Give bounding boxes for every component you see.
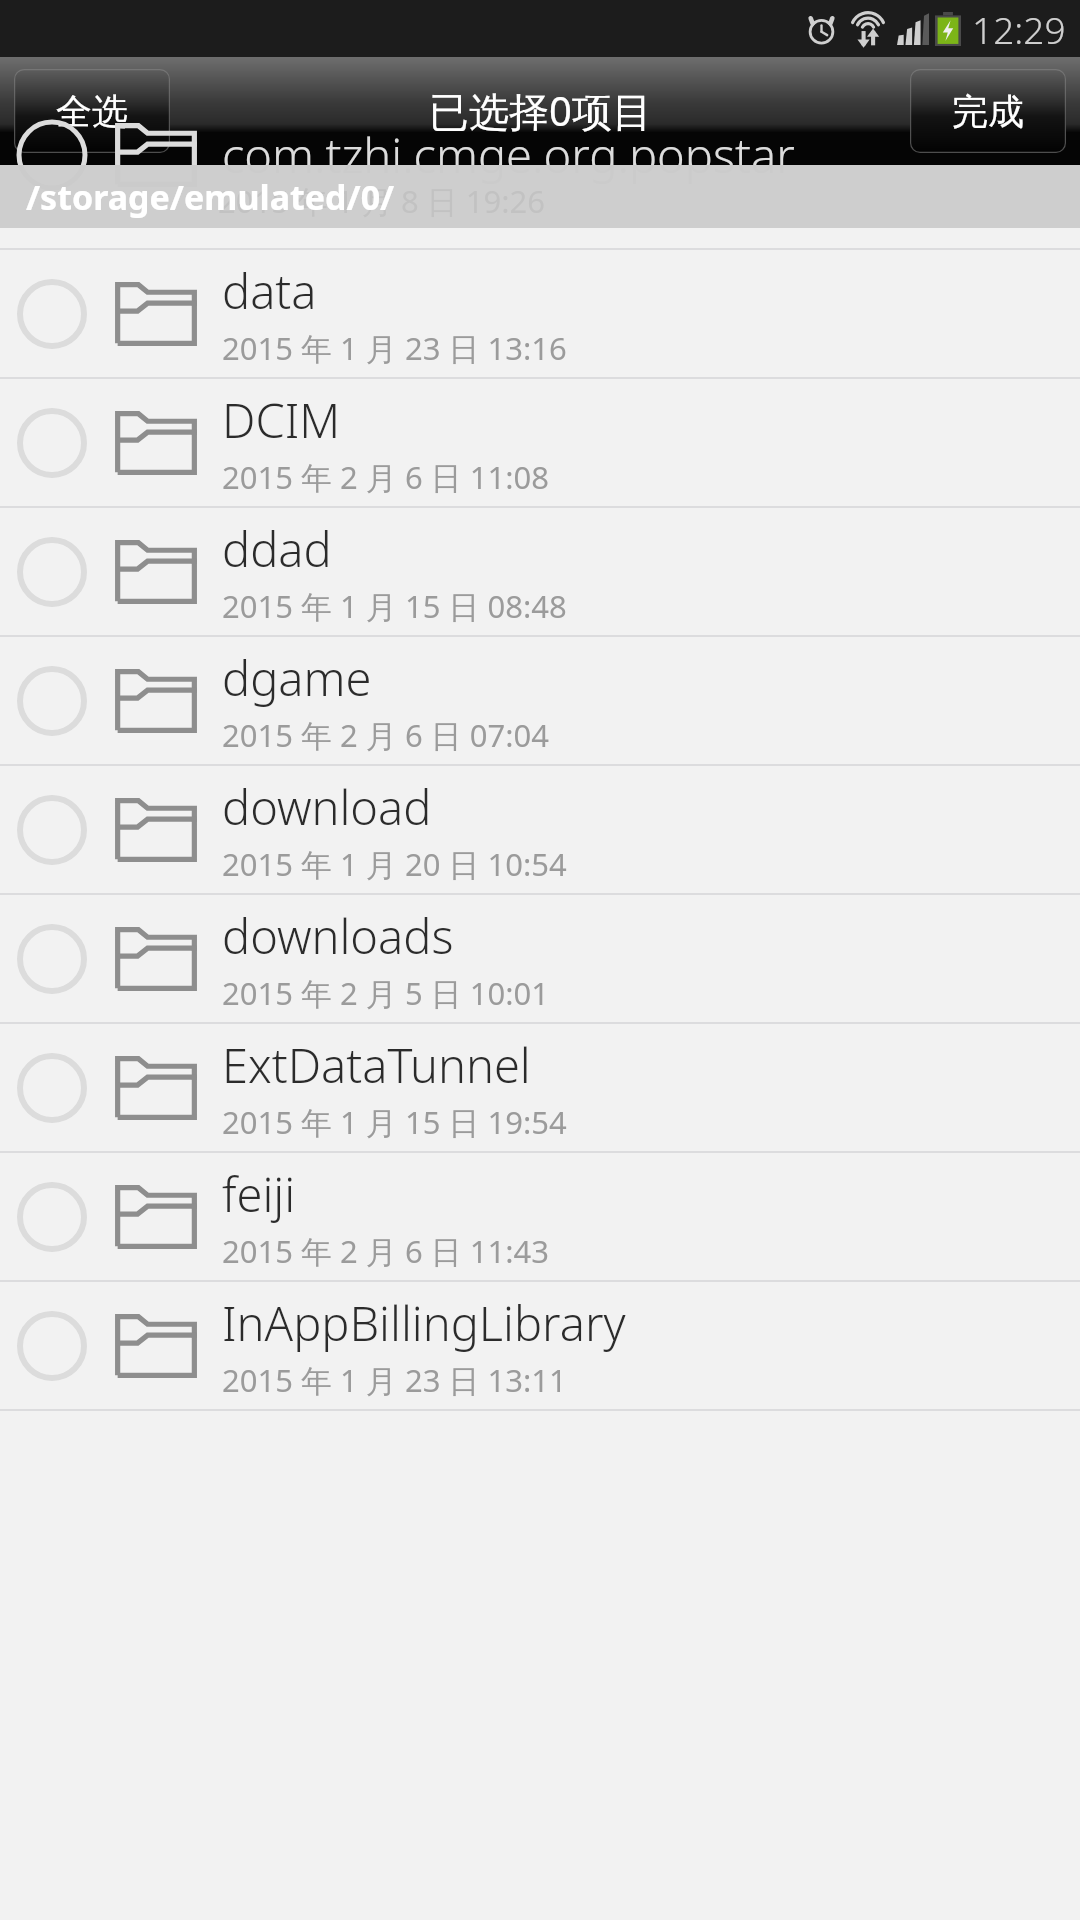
staticText: 2015 年 1 月 20 日 10:54	[222, 843, 567, 885]
staticText: download	[222, 775, 432, 839]
button[interactable]: Select data	[16, 278, 88, 350]
button[interactable]: Select ddad	[16, 536, 88, 608]
button[interactable]: Select InAppBillingLibrary	[0, 1282, 1080, 1409]
button[interactable]: 全选	[14, 69, 170, 153]
staticText: feiji	[222, 1162, 296, 1226]
staticText: 12:29	[972, 4, 1066, 54]
staticText: DCIM	[222, 388, 341, 452]
staticText: 2015 年 1 月 23 日 13:16	[222, 327, 567, 369]
staticText: dgame	[222, 646, 372, 710]
button[interactable]: Select ddad	[0, 508, 1080, 635]
staticText: InAppBillingLibrary	[222, 1291, 626, 1355]
staticText: 全选	[56, 89, 128, 134]
staticText: com.tzhi.cmge.org.popstar	[222, 123, 795, 187]
button[interactable]: Select data	[0, 250, 1080, 377]
button[interactable]: Select downloads	[16, 923, 88, 995]
staticText: ddad	[222, 517, 332, 581]
button[interactable]: Select ExtDataTunnel	[0, 1024, 1080, 1151]
staticText: data	[222, 259, 317, 323]
staticText: 完成	[952, 89, 1024, 134]
button[interactable]: Select downloads	[0, 895, 1080, 1022]
button[interactable]: Select feiji	[16, 1181, 88, 1253]
button[interactable]: Select InAppBillingLibrary	[16, 1310, 88, 1382]
button[interactable]: Select download	[16, 794, 88, 866]
staticText: 2015 年 2 月 6 日 11:43	[222, 1230, 549, 1272]
staticText: 2015 年 1 月 8 日 19:26	[218, 180, 545, 222]
staticText: 2015 年 1 月 15 日 08:48	[222, 585, 567, 627]
button[interactable]: 完成	[910, 69, 1066, 153]
staticText: downloads	[222, 904, 454, 968]
button[interactable]: Select dgame	[16, 665, 88, 737]
staticText: /storage/emulated/0/	[26, 174, 395, 220]
staticText: 2015 年 1 月 23 日 13:11	[222, 1359, 567, 1401]
button[interactable]: Select ExtDataTunnel	[16, 1052, 88, 1124]
staticText: 2015 年 2 月 5 日 10:01	[222, 972, 549, 1014]
staticText: 2015 年 1 月 15 日 19:54	[222, 1101, 567, 1143]
button[interactable]: Select download	[0, 766, 1080, 893]
button[interactable]: Select DCIM	[16, 407, 88, 479]
staticText: 已选择0项目	[429, 83, 652, 138]
button[interactable]: /storage/emulated/0/	[0, 165, 1080, 228]
button[interactable]: Select DCIM	[0, 379, 1080, 506]
staticText: ExtDataTunnel	[222, 1033, 531, 1097]
staticText: 2015 年 2 月 6 日 11:08	[222, 456, 549, 498]
button[interactable]: Select feiji	[0, 1153, 1080, 1280]
staticText: 2015 年 2 月 6 日 07:04	[222, 714, 549, 756]
button[interactable]: Select dgame	[0, 637, 1080, 764]
